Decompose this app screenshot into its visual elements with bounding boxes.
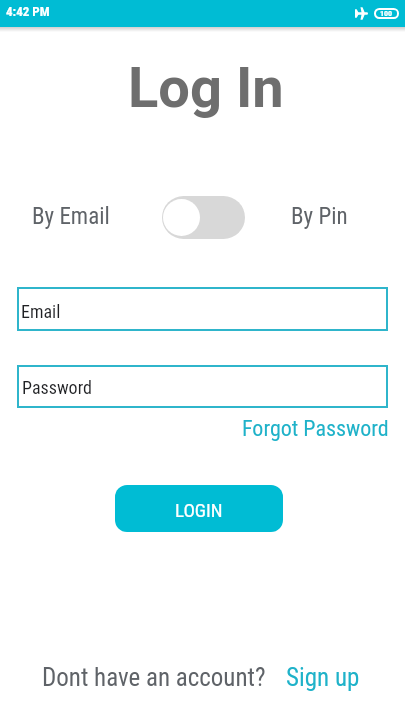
button[interactable]: Email	[17, 287, 388, 331]
staticText: 100	[380, 9, 393, 18]
staticText: Log In	[128, 55, 284, 121]
staticText: LOGIN	[175, 499, 223, 521]
button[interactable]: Sign up	[286, 663, 360, 692]
staticText: Password	[22, 377, 92, 398]
button[interactable]: Password	[17, 365, 388, 408]
button[interactable]	[162, 196, 245, 239]
staticText: 4:42 PM	[6, 4, 50, 19]
button[interactable]: By Email	[32, 203, 110, 230]
staticText: Dont have an account?	[42, 663, 266, 692]
button[interactable]: By Pin	[291, 203, 348, 230]
button[interactable]: LOGIN	[115, 485, 283, 532]
staticText: Email	[21, 301, 61, 322]
button[interactable]: Forgot Password	[242, 416, 389, 442]
